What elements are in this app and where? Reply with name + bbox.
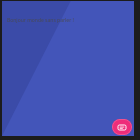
button[interactable]: Compose message bbox=[112, 119, 132, 135]
button[interactable] bbox=[2, 1, 134, 136]
staticText: Bonjour monde sans parler ! bbox=[7, 17, 127, 24]
